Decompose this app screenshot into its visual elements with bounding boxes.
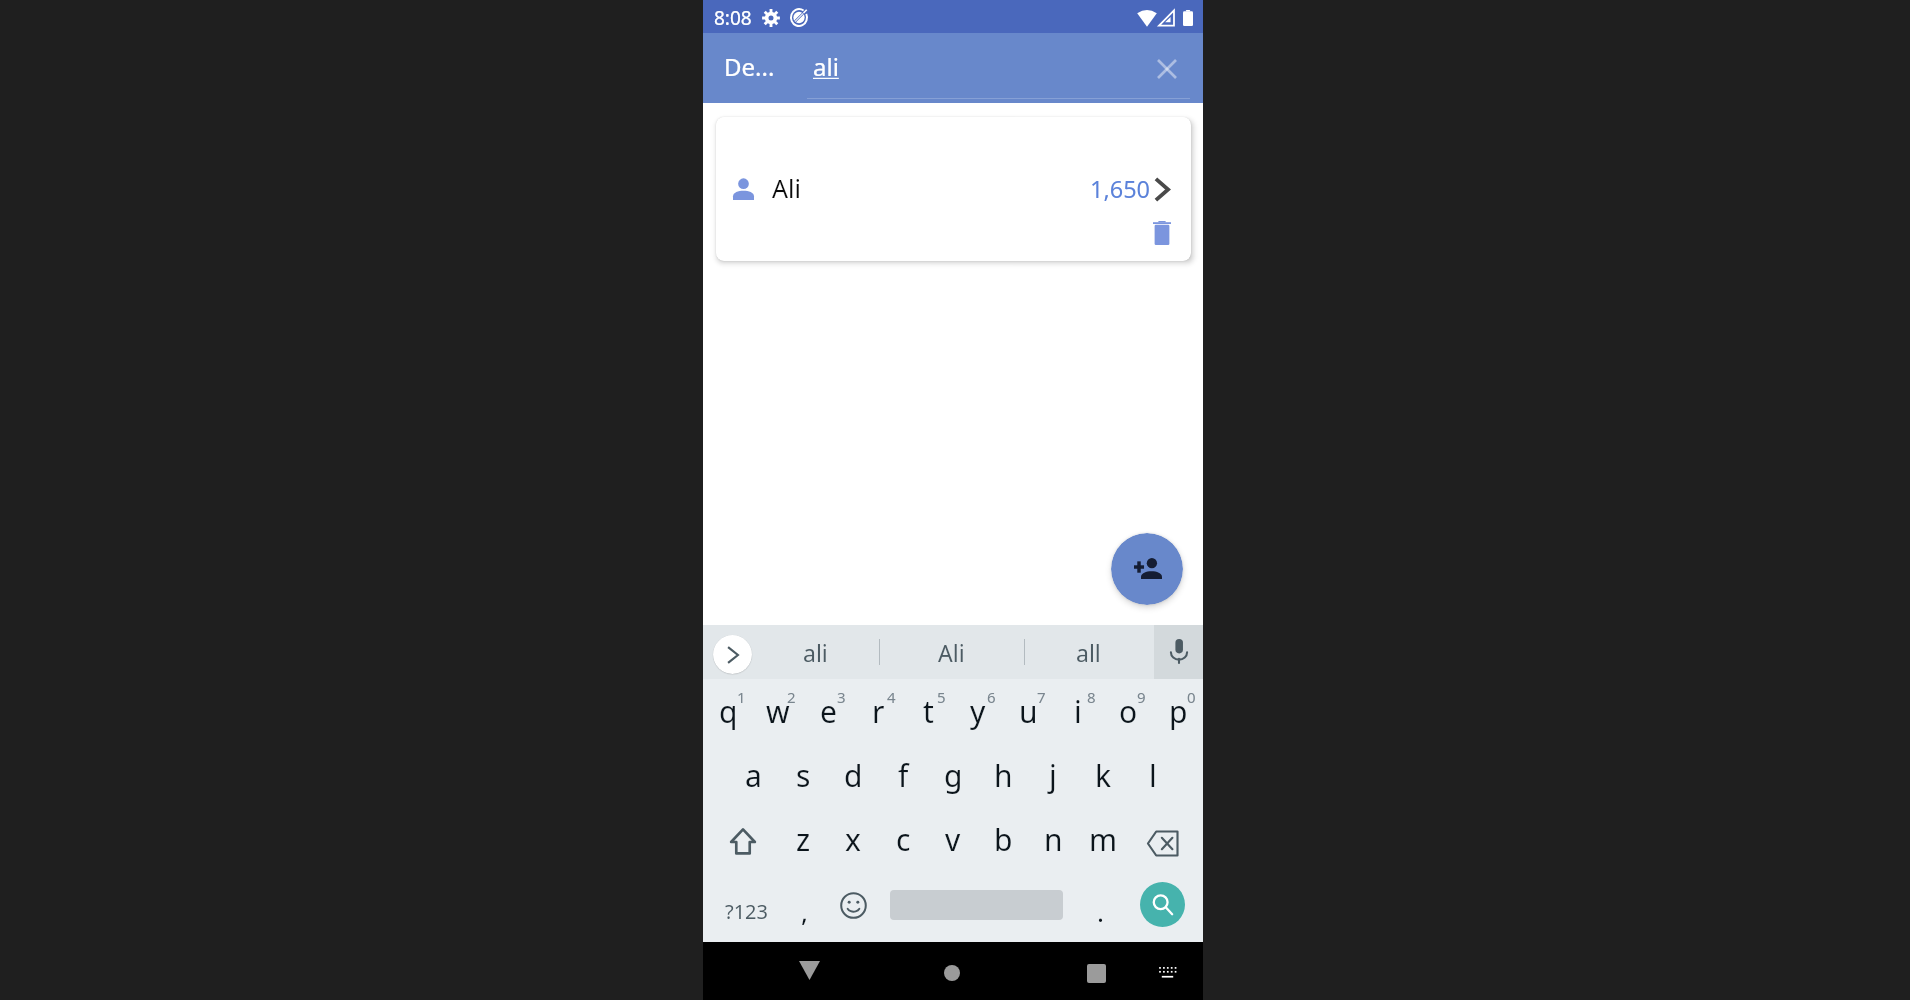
button[interactable]: c <box>878 819 928 871</box>
staticText: all <box>1076 637 1101 668</box>
button[interactable]: e <box>803 691 853 743</box>
button[interactable]: w <box>753 691 803 743</box>
button[interactable]: m <box>1078 819 1128 871</box>
button[interactable]: j <box>1028 755 1078 807</box>
button[interactable]: ali <box>765 625 865 679</box>
button[interactable]: b <box>978 819 1028 871</box>
button[interactable]: u <box>1003 691 1053 743</box>
staticText: f <box>898 755 909 796</box>
staticText: 7 <box>1037 687 1046 707</box>
staticText: u <box>1019 691 1038 732</box>
staticText: 8 <box>1087 687 1096 707</box>
staticText: s <box>796 755 811 796</box>
button[interactable]: l <box>1128 755 1178 807</box>
staticText: o <box>1119 691 1138 732</box>
button[interactable]: d <box>828 755 878 807</box>
staticText: . <box>1097 894 1104 929</box>
staticText: , <box>801 894 808 929</box>
staticText: 2 <box>787 687 796 707</box>
staticText: De... <box>724 50 775 83</box>
staticText: 3 <box>837 687 846 707</box>
staticText: ali <box>813 50 839 83</box>
button[interactable]: Search <box>1140 882 1185 927</box>
button[interactable]: Clear search <box>1149 51 1185 87</box>
button[interactable]: Delete <box>1147 218 1177 248</box>
staticText: 8:08 <box>714 5 752 31</box>
button[interactable]: s <box>778 755 828 807</box>
button[interactable]: k <box>1078 755 1128 807</box>
button[interactable]: , <box>783 880 826 942</box>
button[interactable]: Shift <box>703 819 778 871</box>
staticText: ?123 <box>725 898 768 925</box>
button[interactable]: r <box>853 691 903 743</box>
staticText: w <box>766 691 790 732</box>
staticText: e <box>820 691 837 732</box>
staticText: k <box>1095 755 1112 796</box>
staticText: z <box>796 819 811 860</box>
staticText: 1 <box>737 687 746 707</box>
staticText: v <box>945 819 961 860</box>
button[interactable]: Voice input <box>1154 625 1203 679</box>
staticText: g <box>944 755 963 796</box>
staticText: n <box>1044 819 1063 860</box>
button[interactable]: y <box>953 691 1003 743</box>
button[interactable]: v <box>928 819 978 871</box>
staticText: Ali <box>938 637 965 668</box>
button[interactable]: Ali <box>901 625 1001 679</box>
staticText: l <box>1149 755 1157 796</box>
staticText: b <box>994 819 1013 860</box>
staticText: p <box>1169 691 1188 732</box>
staticText: 0 <box>1187 687 1196 707</box>
staticText: 9 <box>1137 687 1146 707</box>
button[interactable]: Recents <box>1072 949 1120 997</box>
staticText: 4 <box>887 687 896 707</box>
button[interactable]: Space <box>883 880 1071 942</box>
staticText: r <box>872 691 885 732</box>
staticText: 5 <box>937 687 946 707</box>
staticText: c <box>896 819 911 860</box>
button[interactable]: all <box>1038 625 1138 679</box>
button[interactable]: z <box>778 819 828 871</box>
staticText: x <box>845 819 861 860</box>
staticText: t <box>923 691 934 732</box>
button[interactable]: Expand suggestions <box>713 635 752 674</box>
button[interactable]: a <box>728 755 778 807</box>
button[interactable]: ?123 <box>707 880 785 942</box>
staticText: 1,650 <box>1090 173 1151 205</box>
button[interactable]: Back <box>785 946 833 994</box>
staticText: 6 <box>987 687 996 707</box>
staticText: d <box>844 755 863 796</box>
button[interactable]: o <box>1103 691 1153 743</box>
button[interactable]: g <box>928 755 978 807</box>
button[interactable]: Emoji <box>827 880 880 942</box>
button[interactable]: q <box>703 691 753 743</box>
button[interactable]: Add person <box>1111 533 1183 605</box>
button[interactable]: f <box>878 755 928 807</box>
staticText: j <box>1049 755 1057 796</box>
button[interactable]: t <box>903 691 953 743</box>
staticText: i <box>1074 691 1082 732</box>
button[interactable]: i <box>1053 691 1103 743</box>
button[interactable]: . <box>1079 880 1122 942</box>
button[interactable]: p <box>1153 691 1203 743</box>
staticText: a <box>745 755 762 796</box>
staticText: m <box>1089 819 1118 860</box>
staticText: Ali <box>772 171 801 205</box>
button[interactable]: n <box>1028 819 1078 871</box>
button[interactable]: Backspace <box>1128 819 1203 871</box>
button[interactable]: Ali <box>716 117 1191 261</box>
staticText: ali <box>803 637 828 668</box>
staticText: h <box>994 755 1013 796</box>
button[interactable]: Home <box>928 949 976 997</box>
staticText: y <box>970 691 986 732</box>
staticText: q <box>719 691 738 732</box>
button[interactable]: h <box>978 755 1028 807</box>
button[interactable]: x <box>828 819 878 871</box>
button[interactable]: Switch keyboard <box>1147 952 1187 992</box>
